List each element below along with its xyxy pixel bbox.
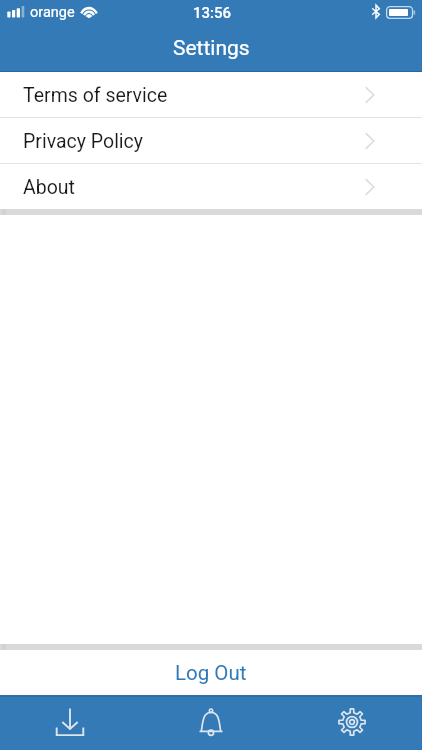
- staticText: Privacy Policy: [23, 130, 144, 153]
- staticText: Log Out: [175, 661, 247, 685]
- button[interactable]: About: [0, 164, 422, 209]
- staticText: orange: [30, 4, 75, 21]
- button[interactable]: Log Out: [0, 650, 422, 695]
- button[interactable]: Notifications: [140, 695, 281, 750]
- staticText: About: [23, 176, 75, 199]
- button[interactable]: Settings: [281, 695, 422, 750]
- staticText: Terms of service: [23, 84, 168, 107]
- button[interactable]: Downloads: [0, 695, 140, 750]
- button[interactable]: Terms of service: [0, 72, 422, 117]
- staticText: 13:56: [193, 4, 232, 22]
- button[interactable]: Privacy Policy: [0, 118, 422, 163]
- staticText: Settings: [173, 36, 250, 61]
